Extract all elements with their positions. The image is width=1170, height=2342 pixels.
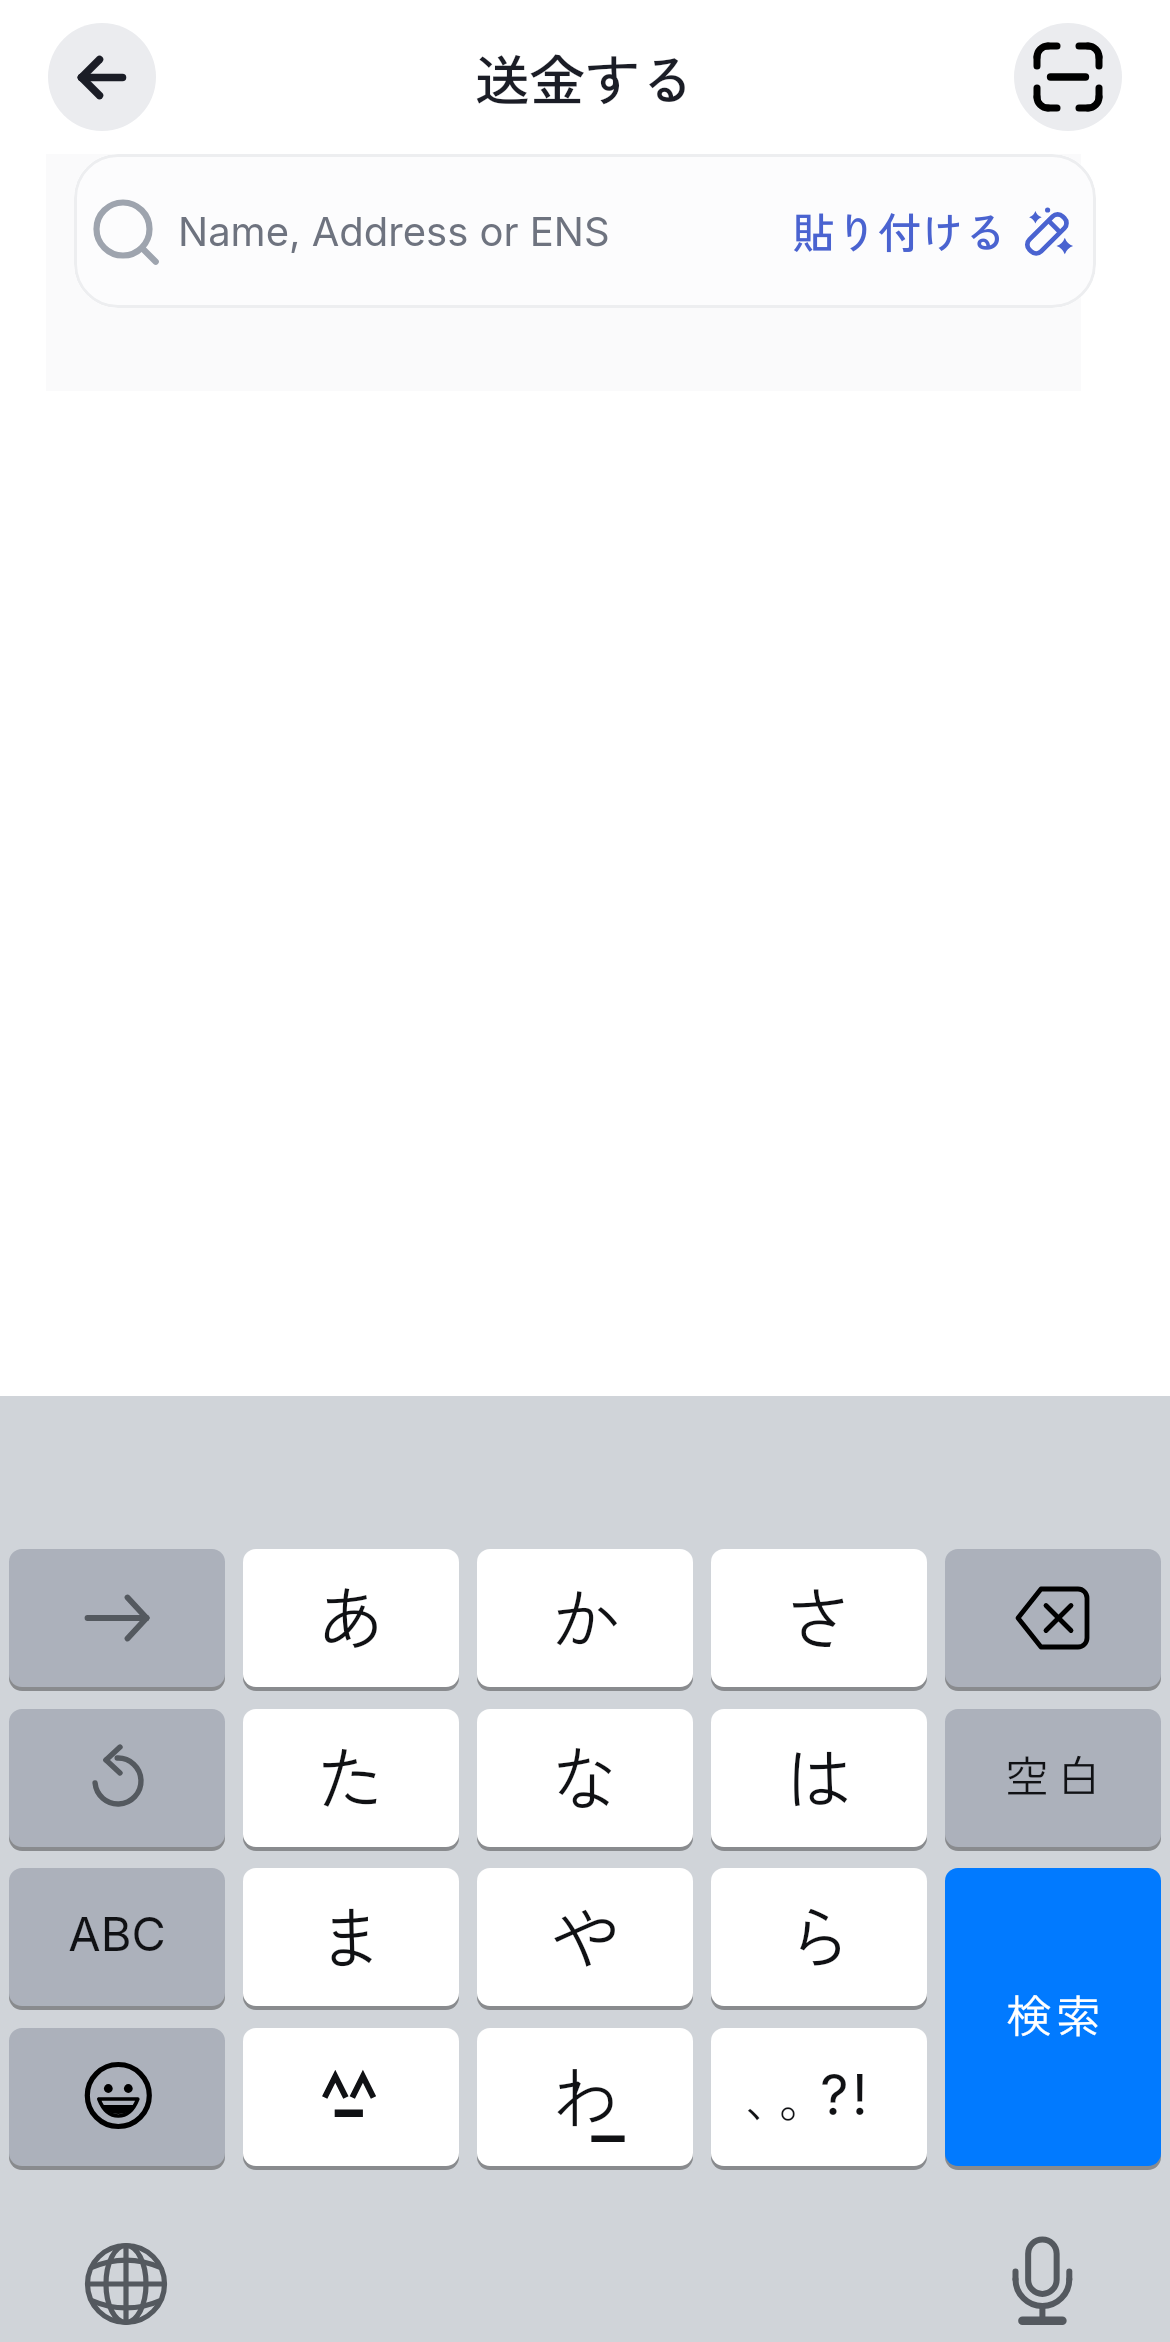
staticText: Name, Address or ENS — [178, 207, 610, 255]
staticText: あ — [316, 1564, 386, 1665]
button[interactable]: Change keyboard language — [76, 2234, 176, 2334]
button[interactable] — [9, 2028, 225, 2166]
staticText: 貼り付ける — [792, 199, 1007, 261]
staticText: 送金する — [475, 37, 696, 117]
button[interactable]: 空白 — [945, 1709, 1161, 1847]
staticText: 検索 — [1006, 1981, 1105, 2046]
button[interactable]: Dictation — [992, 2234, 1092, 2334]
button[interactable]: 、 — [711, 2028, 927, 2166]
staticText: 、 — [744, 2060, 794, 2132]
button[interactable] — [9, 1709, 225, 1847]
button[interactable]: た — [243, 1709, 459, 1847]
staticText: な — [550, 1724, 620, 1825]
button[interactable]: Name, Address or ENS — [74, 154, 1096, 308]
button[interactable]: や — [477, 1868, 693, 2006]
staticText: わ — [550, 2043, 620, 2144]
button[interactable] — [243, 2028, 459, 2166]
staticText: さ — [784, 1564, 854, 1665]
staticText: ABC — [68, 1905, 166, 1962]
button[interactable]: わ — [477, 2028, 693, 2166]
button[interactable]: か — [477, 1549, 693, 1687]
button[interactable]: Back — [48, 23, 156, 131]
staticText: ?! — [820, 2061, 871, 2129]
button[interactable]: ABC — [9, 1868, 225, 2006]
staticText: ら — [784, 1883, 854, 1984]
staticText: は — [784, 1724, 854, 1825]
staticText: 空白 — [1005, 1742, 1109, 1806]
staticText: か — [550, 1564, 620, 1665]
button[interactable]: ら — [711, 1868, 927, 2006]
staticText: ま — [316, 1883, 386, 1984]
button[interactable]: 検索 — [945, 1868, 1161, 2166]
staticText: 。 — [778, 2060, 828, 2132]
button[interactable]: な — [477, 1709, 693, 1847]
staticText: や — [550, 1883, 620, 1984]
button[interactable]: Scan QR code — [1014, 23, 1122, 131]
button[interactable]: あ — [243, 1549, 459, 1687]
button[interactable]: さ — [711, 1549, 927, 1687]
button[interactable]: は — [711, 1709, 927, 1847]
button[interactable] — [9, 1549, 225, 1687]
button[interactable] — [945, 1549, 1161, 1687]
button[interactable]: ま — [243, 1868, 459, 2006]
staticText: た — [316, 1724, 386, 1825]
